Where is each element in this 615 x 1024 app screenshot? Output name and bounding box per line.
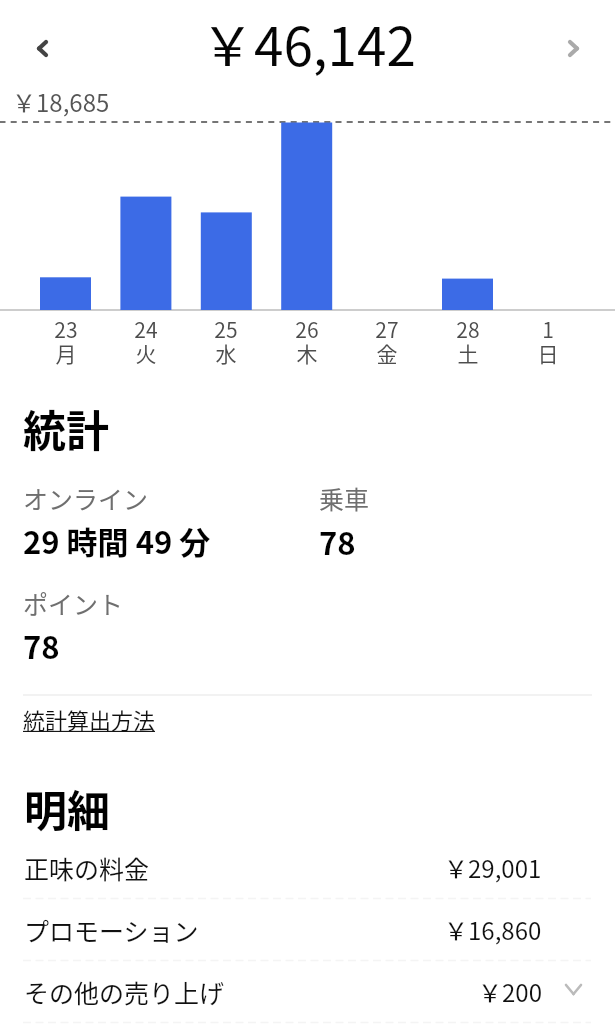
button[interactable]: Next week <box>545 20 601 76</box>
button[interactable]: プロモーション <box>0 899 615 961</box>
button[interactable]: 統計算出方法 <box>23 703 156 735</box>
staticText: 火 <box>106 338 186 368</box>
button[interactable]: Previous week <box>14 20 70 76</box>
staticText: 26 <box>267 314 347 344</box>
staticText: 月 <box>26 338 106 368</box>
staticText: 78 <box>319 519 356 564</box>
staticText: 25 <box>186 314 266 344</box>
staticText: 23 <box>26 314 106 344</box>
staticText: 78 <box>23 623 60 668</box>
staticText: 土 <box>428 338 508 368</box>
staticText: 木 <box>267 338 347 368</box>
staticText: 24 <box>106 314 186 344</box>
staticText: 正味の料金 <box>24 850 150 886</box>
staticText: 29 時間 49 分 <box>23 518 211 563</box>
staticText: オンライン <box>23 480 149 516</box>
button[interactable]: その他の売り上げ <box>0 961 615 1023</box>
button[interactable]: 正味の料金 <box>0 837 615 899</box>
staticText: ポイント <box>23 585 124 621</box>
staticText: その他の売り上げ <box>24 974 225 1010</box>
staticText: 27 <box>347 314 427 344</box>
staticText: 明細 <box>24 777 110 839</box>
staticText: 1 <box>508 314 588 344</box>
staticText: ￥46,142 <box>201 5 416 82</box>
staticText: プロモーション <box>24 912 199 948</box>
staticText: ￥200 <box>478 974 542 1009</box>
staticText: ￥18,685 <box>12 84 110 119</box>
staticText: 日 <box>508 338 588 368</box>
staticText: 水 <box>186 338 266 368</box>
staticText: 28 <box>428 314 508 344</box>
staticText: ￥29,001 <box>444 850 542 885</box>
staticText: 金 <box>347 338 427 368</box>
staticText: 乗車 <box>319 480 370 516</box>
staticText: 統計 <box>23 397 109 459</box>
staticText: ￥16,860 <box>444 912 542 947</box>
